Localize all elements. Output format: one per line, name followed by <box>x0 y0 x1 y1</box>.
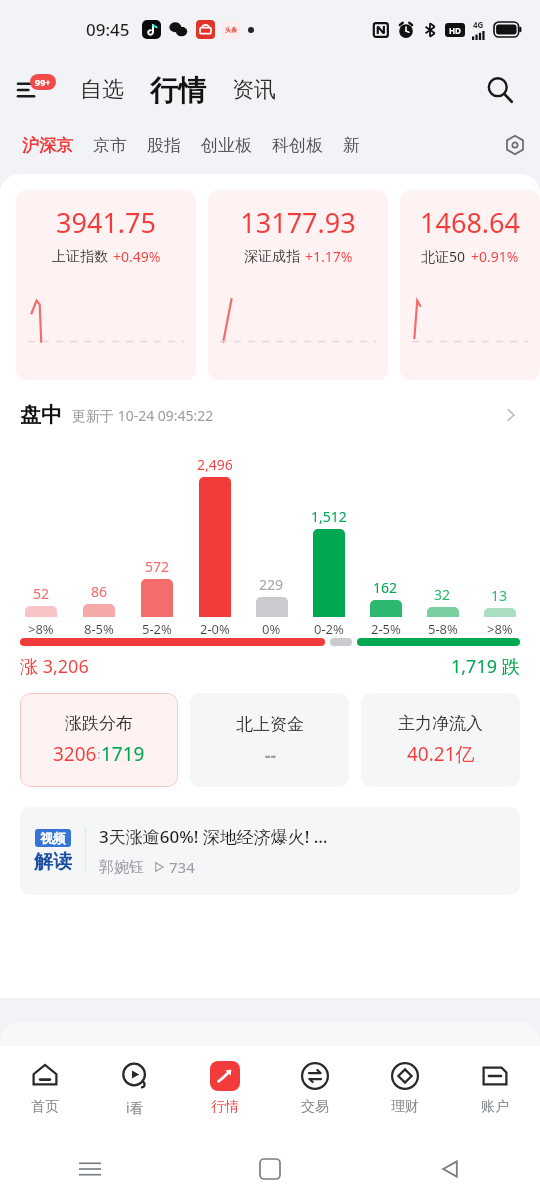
button[interactable]: 北上资金 <box>190 693 349 787</box>
staticText: 新 <box>343 135 360 156</box>
staticText: 1,512 <box>311 507 347 526</box>
staticText: 北证50 <box>421 247 466 266</box>
staticText: 1,719 跌 <box>451 654 520 679</box>
staticText: 头条 <box>225 26 237 34</box>
staticText: 解读 <box>34 850 72 874</box>
staticText: 沪深京 <box>22 135 73 156</box>
staticText: 涨 3,206 <box>20 654 89 679</box>
button[interactable]: 572 <box>128 557 186 638</box>
staticText: 行情 <box>211 1098 239 1116</box>
staticText: >8% <box>487 620 513 638</box>
staticText: 09:45 <box>86 18 130 41</box>
button[interactable]: 3941.75 <box>16 190 196 380</box>
button[interactable]: Settings <box>498 128 532 162</box>
button[interactable]: i看 <box>90 1046 180 1138</box>
staticText: 盘中 <box>20 402 62 428</box>
staticText: 理财 <box>391 1098 419 1116</box>
button[interactable]: 科创板 <box>266 129 329 162</box>
staticText: 3206 <box>53 741 97 767</box>
button[interactable]: 229 <box>243 575 300 638</box>
staticText: 上证指数 <box>52 248 108 266</box>
button[interactable]: 主力净流入 <box>361 693 520 787</box>
staticText: 86 <box>91 582 108 601</box>
button[interactable]: 视频 <box>20 807 520 895</box>
staticText: 3天涨逾60%! 深地经济爆火! … <box>99 825 328 848</box>
button[interactable]: 京市 <box>87 129 133 162</box>
staticText: 1468.64 <box>408 204 532 241</box>
button[interactable]: 2,496 <box>186 455 243 638</box>
staticText: 0% <box>262 620 281 638</box>
staticText: 2-0% <box>200 620 230 638</box>
staticText: 99+ <box>35 76 51 88</box>
staticText: 13 <box>491 586 508 605</box>
button[interactable]: 13 <box>471 586 528 638</box>
staticText: 郭婉钰 <box>99 858 144 877</box>
staticText: 首页 <box>31 1098 59 1116</box>
staticText: 52 <box>33 584 50 603</box>
staticText: 5-8% <box>428 620 458 638</box>
staticText: >8% <box>28 620 54 638</box>
staticText: 账户 <box>481 1098 509 1116</box>
staticText: 京市 <box>93 135 127 156</box>
button[interactable]: 86 <box>70 582 128 638</box>
staticText: 创业板 <box>201 135 252 156</box>
staticText: HD <box>449 25 461 36</box>
button[interactable]: 资讯 <box>228 70 280 110</box>
staticText: 科创板 <box>272 135 323 156</box>
staticText: 2,496 <box>197 455 233 474</box>
staticText: +1.17% <box>305 247 353 266</box>
button[interactable]: 账户 <box>450 1046 540 1138</box>
button[interactable]: 162 <box>357 578 414 638</box>
staticText: 主力净流入 <box>398 713 483 734</box>
staticText: 涨跌分布 <box>65 713 133 734</box>
staticText: 2-5% <box>371 620 401 638</box>
staticText: 更新于 10-24 09:45:22 <box>72 406 214 425</box>
staticText: 1719 <box>101 741 145 767</box>
button[interactable]: Menu <box>18 68 62 112</box>
staticText: 572 <box>145 557 170 576</box>
staticText: : <box>97 745 101 763</box>
staticText: 交易 <box>301 1098 329 1116</box>
staticText: 13177.93 <box>216 204 380 241</box>
staticText: 深证成指 <box>244 248 300 266</box>
button[interactable]: 13177.93 <box>208 190 388 380</box>
button[interactable]: 行情 <box>146 71 210 110</box>
staticText: 资讯 <box>232 76 276 104</box>
button[interactable]: 股指 <box>141 129 187 162</box>
button[interactable]: 行情 <box>180 1046 270 1138</box>
staticText: +0.49% <box>113 247 161 266</box>
staticText: 32 <box>434 585 451 604</box>
staticText: 北上资金 <box>236 714 304 735</box>
staticText: -- <box>265 744 276 767</box>
button[interactable]: 涨跌分布 <box>20 693 178 787</box>
staticText: 0-2% <box>314 620 344 638</box>
staticText: 734 <box>169 857 195 877</box>
button[interactable]: 沪深京 <box>16 129 79 162</box>
button[interactable]: 新 <box>337 129 366 162</box>
staticText: i看 <box>126 1098 144 1117</box>
staticText: 3941.75 <box>24 204 188 241</box>
button[interactable]: 1,512 <box>300 507 357 638</box>
staticText: 自选 <box>80 76 124 104</box>
button[interactable]: 1468.64 <box>400 190 540 380</box>
staticText: 行情 <box>150 73 206 108</box>
staticText: 229 <box>259 575 284 594</box>
button[interactable]: 自选 <box>76 70 128 110</box>
staticText: 40.21亿 <box>407 741 475 767</box>
staticText: 5-2% <box>142 620 172 638</box>
button[interactable]: 52 <box>12 584 70 638</box>
staticText: 8-5% <box>84 620 114 638</box>
staticText: 股指 <box>147 135 181 156</box>
button[interactable]: 理财 <box>360 1046 450 1138</box>
button[interactable]: Search <box>478 68 522 112</box>
button[interactable]: 盘中 <box>20 392 520 438</box>
button[interactable]: 交易 <box>270 1046 360 1138</box>
button[interactable]: 首页 <box>0 1046 90 1138</box>
staticText: 视频 <box>40 830 66 846</box>
staticText: +0.91% <box>471 247 519 266</box>
button[interactable]: 32 <box>414 585 471 638</box>
staticText: 162 <box>373 578 398 597</box>
button[interactable]: 创业板 <box>195 129 258 162</box>
staticText: 4G <box>473 19 484 30</box>
